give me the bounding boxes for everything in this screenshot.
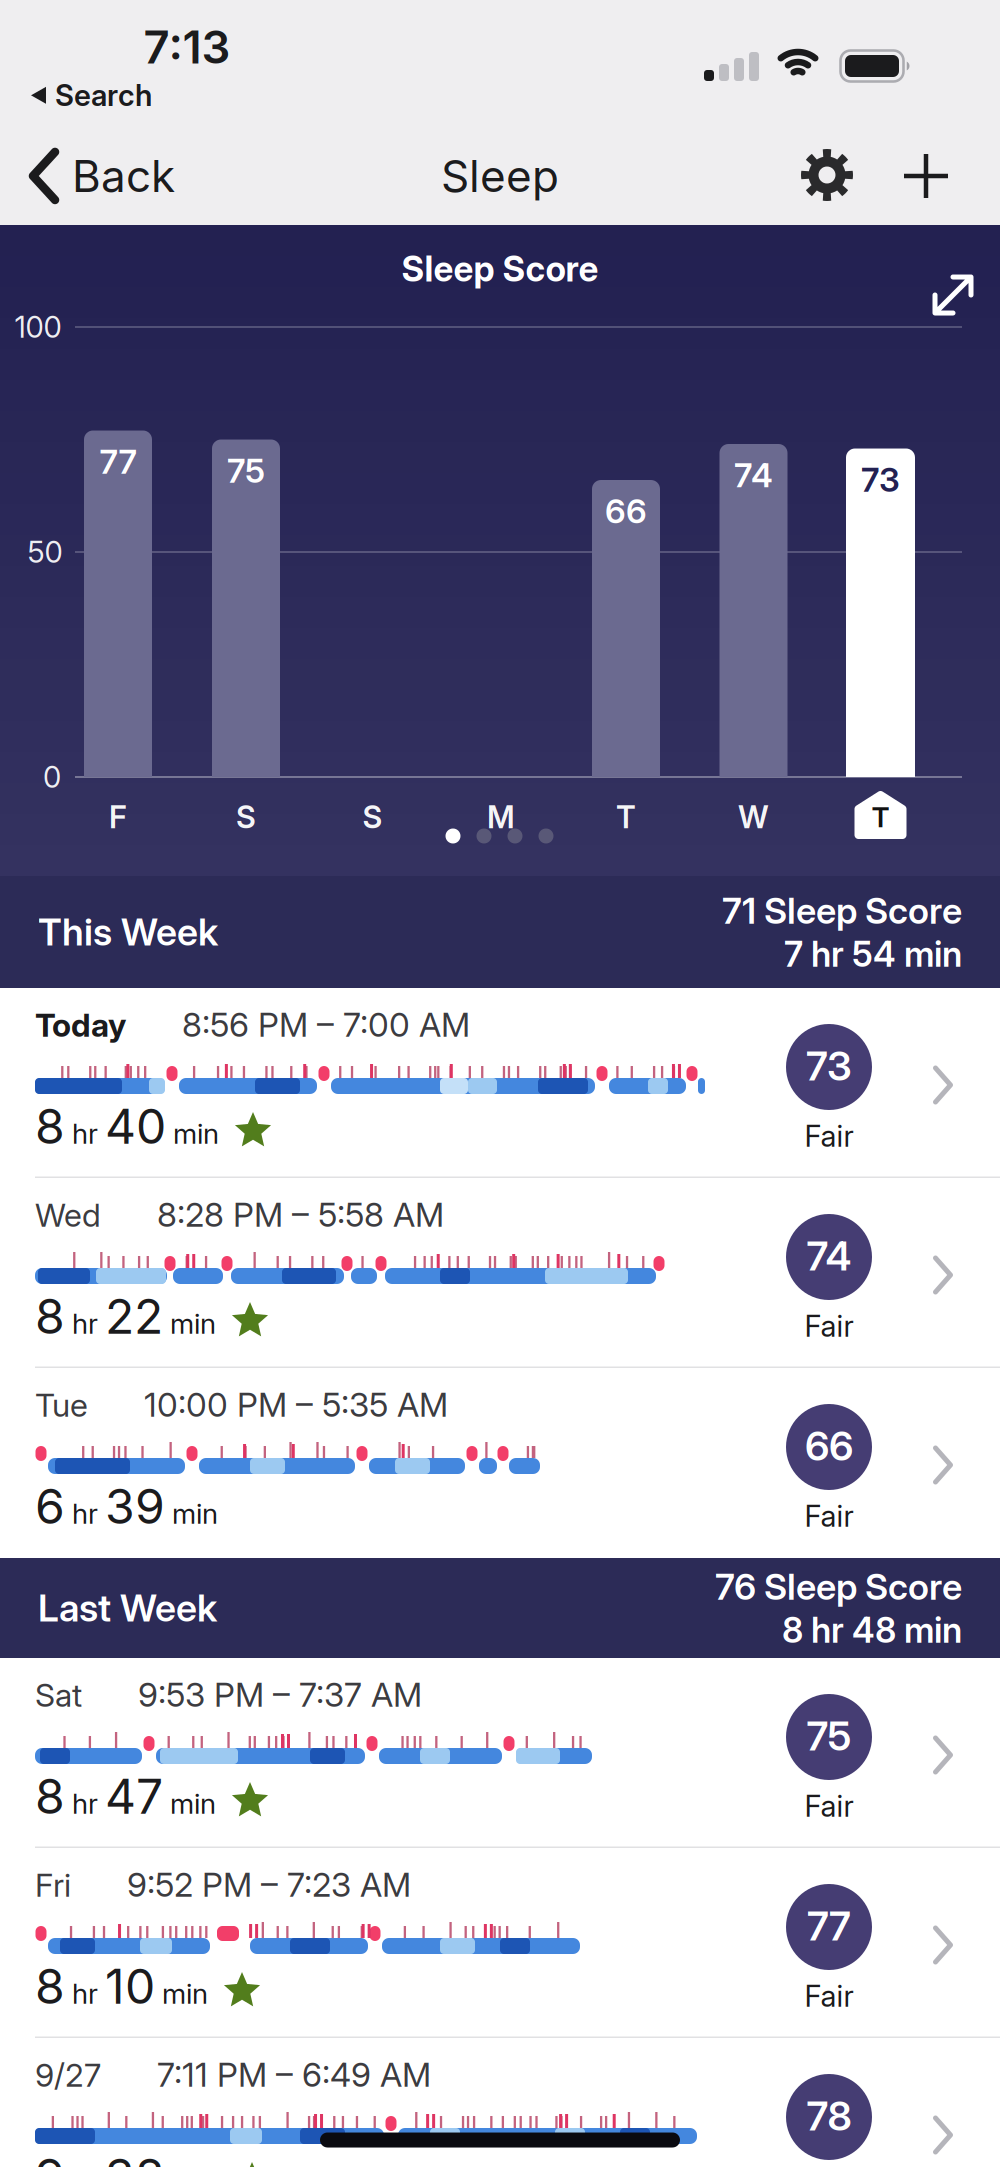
staticText: hr	[72, 1307, 98, 1340]
staticText: Wed	[35, 1196, 101, 1234]
staticText: 10:00 PM – 5:35 AM	[144, 1385, 448, 1424]
staticText: hr	[72, 1497, 98, 1530]
staticText: 0	[43, 760, 61, 794]
staticText: Fair	[804, 1309, 853, 1343]
button[interactable]: Back	[30, 150, 175, 202]
staticText: 7 hr 54 min	[784, 934, 962, 975]
staticText: Last Week	[38, 1586, 217, 1630]
staticText: 8	[35, 1288, 65, 1345]
staticText: T	[871, 800, 889, 833]
button[interactable]: Wed	[0, 1178, 1000, 1368]
button[interactable]: Today	[0, 988, 1000, 1178]
staticText: 75	[806, 1712, 851, 1760]
button[interactable]: Add	[904, 154, 948, 198]
button[interactable]: Tue	[0, 1368, 1000, 1558]
staticText: 8	[35, 1098, 65, 1155]
staticText: min	[172, 1497, 218, 1530]
staticText: Fair	[804, 1979, 853, 2013]
staticText: 8:56 PM – 7:00 AM	[182, 1005, 470, 1044]
staticText: 10	[105, 1958, 155, 2015]
staticText: 66	[605, 491, 647, 531]
staticText: Tue	[35, 1386, 88, 1424]
staticText: 39	[105, 1478, 165, 1535]
staticText: 75	[227, 451, 265, 490]
staticText: Back	[72, 150, 175, 202]
staticText: hr	[72, 1117, 98, 1150]
staticText: Fri	[35, 1866, 71, 1904]
staticText: 66	[805, 1422, 853, 1470]
staticText: 50	[27, 535, 62, 569]
staticText: 22	[105, 1288, 163, 1345]
staticText: 77	[99, 442, 136, 481]
staticText: 71 Sleep Score	[722, 889, 962, 932]
staticText: This Week	[38, 910, 218, 954]
staticText: 8	[35, 1768, 65, 1825]
staticText: S	[236, 799, 256, 835]
staticText: min	[162, 1977, 208, 2010]
staticText: 100	[14, 310, 61, 344]
staticText: 74	[806, 1232, 851, 1280]
staticText: Sleep	[441, 150, 559, 202]
staticText: 7:11 PM – 6:49 AM	[157, 2055, 431, 2094]
staticText: T	[616, 799, 636, 835]
staticText: hr	[72, 1787, 98, 1820]
staticText: 8:28 PM – 5:58 AM	[157, 1195, 444, 1234]
button[interactable]: Settings	[800, 148, 854, 202]
staticText: Search	[55, 78, 152, 113]
staticText: 73	[861, 460, 900, 499]
staticText: F	[109, 799, 127, 835]
staticText: min	[173, 1117, 219, 1150]
staticText: Sleep Score	[401, 249, 598, 289]
button[interactable]: Fri	[0, 1848, 1000, 2038]
staticText: 6	[35, 1478, 65, 1535]
button[interactable]: Expand chart	[931, 273, 975, 317]
button[interactable]: Sat	[0, 1658, 1000, 1848]
staticText: hr	[72, 1977, 98, 2010]
staticText: 77	[807, 1902, 851, 1950]
button[interactable]: Search	[31, 78, 152, 113]
staticText: 9	[35, 2148, 65, 2167]
staticText: S	[362, 799, 382, 835]
staticText: 8	[35, 1958, 65, 2015]
staticText: 9:53 PM – 7:37 AM	[138, 1675, 422, 1714]
staticText: min	[170, 1787, 216, 1820]
staticText: 74	[734, 455, 773, 495]
staticText: 9/27	[35, 2056, 101, 2094]
staticText: 40	[105, 1098, 166, 1155]
staticText: 47	[105, 1768, 163, 1825]
staticText: Fair	[804, 1119, 853, 1153]
staticText: Sat	[35, 1676, 82, 1714]
staticText: min	[170, 1307, 216, 1340]
staticText: Fair	[804, 1499, 853, 1533]
staticText: 9:52 PM – 7:23 AM	[127, 1865, 411, 1904]
button[interactable]: 9/27	[0, 2038, 1000, 2167]
staticText: W	[738, 799, 769, 835]
staticText: 8 hr 48 min	[782, 1610, 962, 1651]
staticText: 38	[105, 2148, 165, 2167]
staticText: 76 Sleep Score	[715, 1565, 962, 1608]
staticText: 7:13	[143, 20, 230, 74]
staticText: Today	[35, 1006, 126, 1044]
staticText: 73	[806, 1042, 852, 1090]
staticText: M	[487, 799, 515, 835]
staticText: 78	[806, 2092, 851, 2140]
staticText: Fair	[804, 1789, 853, 1823]
